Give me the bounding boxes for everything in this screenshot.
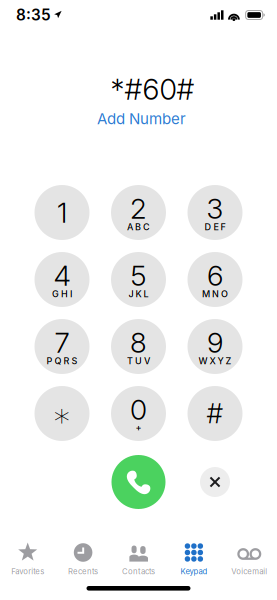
staticText: +: [135, 422, 141, 433]
button[interactable]: 4: [34, 252, 89, 307]
staticText: Recents: [68, 567, 98, 576]
staticText: ∗: [52, 397, 72, 434]
staticText: M N O: [202, 288, 228, 299]
button[interactable]: #: [187, 386, 242, 441]
button[interactable]: Add Number: [84, 107, 193, 128]
button[interactable]: 3: [187, 185, 242, 240]
button[interactable]: 6: [187, 252, 242, 307]
staticText: G H I: [52, 288, 72, 299]
staticText: 4: [53, 259, 70, 292]
staticText: 7: [54, 326, 69, 359]
button[interactable]: 2: [111, 185, 166, 240]
staticText: A B C: [127, 221, 150, 232]
button[interactable]: Favorites: [0, 542, 55, 582]
button[interactable]: 1: [34, 185, 89, 240]
staticText: 0: [130, 393, 147, 426]
staticText: 9: [207, 326, 223, 359]
button[interactable]: Voicemail: [222, 542, 277, 582]
button[interactable]: Keypad: [166, 542, 222, 582]
button[interactable]: 5: [111, 252, 166, 307]
button[interactable]: 9: [187, 319, 242, 374]
staticText: P Q R S: [46, 355, 77, 366]
button[interactable]: Delete: [200, 467, 230, 497]
button[interactable]: Recents: [55, 542, 111, 582]
button[interactable]: 0: [111, 386, 166, 441]
staticText: 8: [130, 326, 147, 359]
button[interactable]: 7: [34, 319, 89, 374]
staticText: #: [206, 397, 223, 430]
staticText: *#60#: [110, 72, 194, 107]
staticText: 3: [206, 192, 223, 225]
staticText: W X Y Z: [198, 355, 231, 366]
staticText: Favorites: [11, 567, 44, 576]
staticText: 1: [57, 196, 67, 229]
button[interactable]: ∗: [34, 386, 89, 441]
staticText: Keypad: [180, 567, 207, 576]
staticText: Voicemail: [231, 567, 267, 576]
staticText: 6: [207, 259, 223, 292]
staticText: 5: [130, 259, 146, 292]
button[interactable]: Call: [111, 455, 165, 509]
staticText: Add Number: [97, 110, 186, 128]
staticText: J K L: [128, 288, 148, 299]
staticText: 8:35: [16, 6, 51, 24]
button[interactable]: 8: [111, 319, 166, 374]
staticText: D E F: [204, 221, 225, 232]
button[interactable]: Contacts: [111, 542, 166, 582]
staticText: T U V: [127, 355, 150, 366]
staticText: 2: [130, 192, 147, 225]
staticText: Contacts: [122, 567, 155, 576]
